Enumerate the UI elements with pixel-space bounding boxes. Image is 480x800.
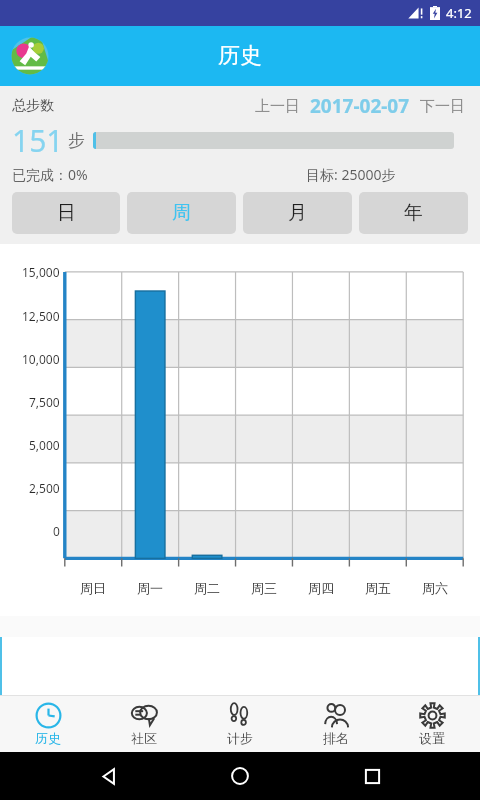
staticText: 上一日 — [255, 97, 300, 116]
button[interactable]: 设置 — [384, 695, 480, 752]
button[interactable]: 周 — [127, 192, 236, 234]
staticText: 总步数 — [12, 97, 54, 115]
staticText: 步 — [68, 130, 85, 151]
staticText: 2,500 — [29, 480, 60, 496]
button[interactable]: 计步 — [192, 695, 288, 752]
staticText: 2017-02-07 — [310, 93, 410, 119]
staticText: 15,000 — [22, 264, 60, 280]
staticText: 10,000 — [22, 351, 60, 367]
staticText: 0 — [53, 523, 60, 539]
staticText: 周日 — [80, 580, 106, 596]
staticText: 历史 — [35, 730, 61, 746]
staticText: 下一日 — [420, 97, 465, 116]
button[interactable]: 下一日 — [417, 95, 468, 118]
button[interactable]: Home — [216, 752, 264, 800]
staticText: 周六 — [422, 580, 448, 596]
staticText: 排名 — [323, 730, 349, 746]
staticText: 151 — [12, 120, 64, 161]
button[interactable]: 月 — [243, 192, 352, 234]
staticText: 7,500 — [29, 394, 60, 410]
staticText: 目标: 25000步 — [306, 165, 396, 184]
staticText: 周一 — [137, 580, 163, 596]
button[interactable]: 社区 — [96, 695, 192, 752]
staticText: 月 — [288, 201, 307, 225]
staticText: 计步 — [227, 730, 253, 746]
staticText: 历史 — [218, 42, 262, 70]
staticText: 5,000 — [29, 437, 60, 453]
staticText: 年 — [404, 201, 423, 225]
staticText: 社区 — [131, 730, 157, 746]
button[interactable]: App logo — [9, 35, 51, 77]
staticText: 设置 — [419, 730, 445, 746]
button[interactable]: 日 — [12, 192, 120, 234]
staticText: 周 — [172, 201, 191, 225]
staticText: 周四 — [308, 580, 334, 596]
button[interactable]: 年 — [359, 192, 468, 234]
staticText: 周五 — [365, 580, 391, 596]
staticText: 周三 — [251, 580, 277, 596]
staticText: 已完成：0% — [12, 165, 88, 184]
button[interactable]: Recent apps — [348, 752, 396, 800]
staticText: 12,500 — [22, 308, 60, 324]
staticText: 周二 — [194, 580, 220, 596]
staticText: 日 — [57, 201, 76, 225]
staticText: 4:12 — [446, 4, 472, 22]
button[interactable]: Back — [84, 752, 132, 800]
button[interactable]: 上一日 — [252, 95, 303, 118]
button[interactable]: 排名 — [288, 695, 384, 752]
button[interactable]: 历史 — [0, 695, 96, 752]
